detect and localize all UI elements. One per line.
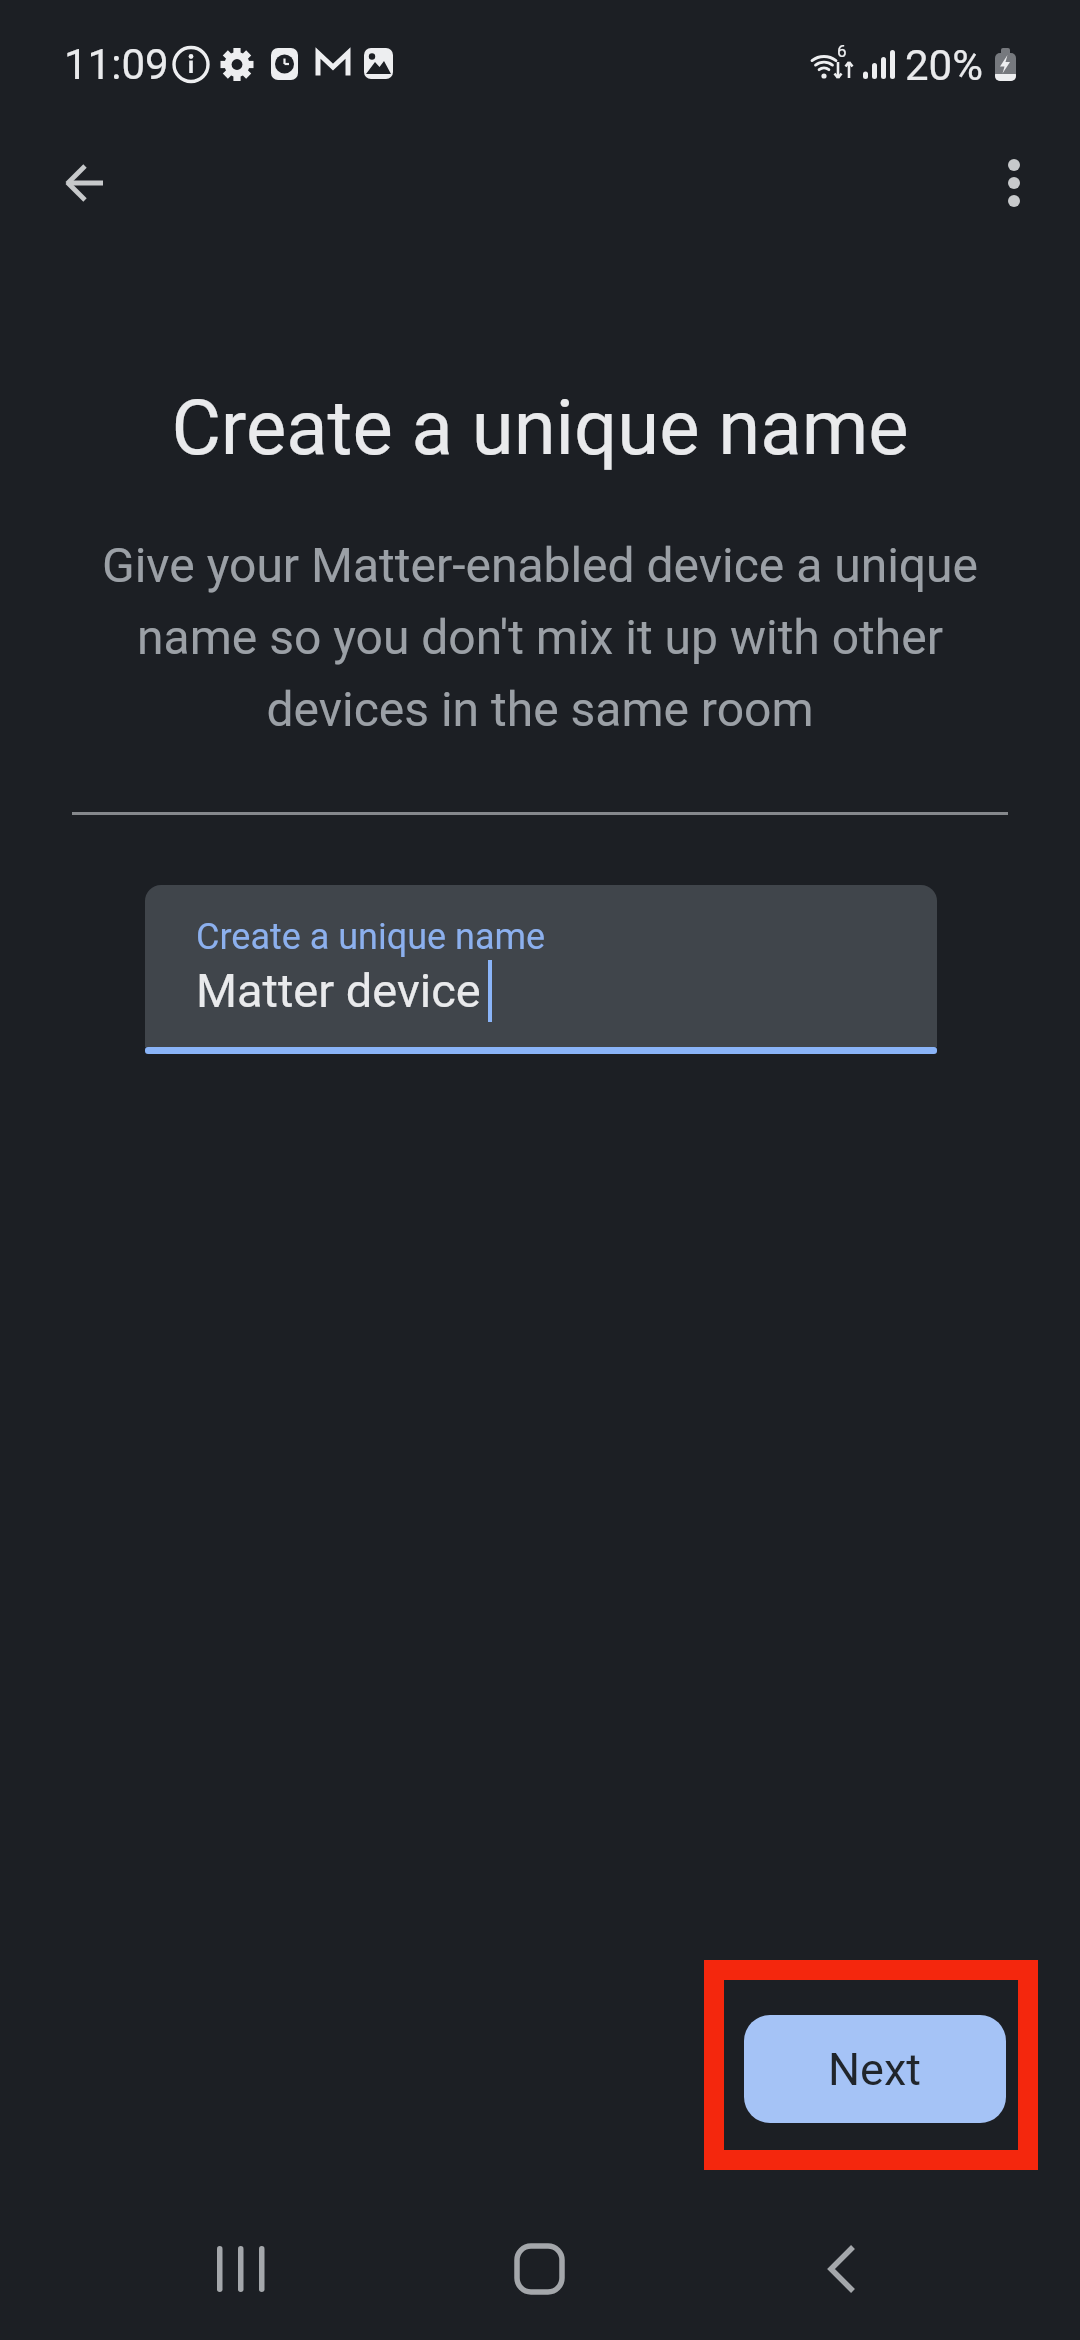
staticText: 20% — [905, 41, 983, 90]
button[interactable] — [966, 135, 1062, 231]
staticText: Give your Matter-enabled device a unique… — [0, 537, 1080, 738]
button[interactable] — [770, 2198, 914, 2340]
staticText: Create a unique name — [196, 916, 546, 958]
staticText: Next — [828, 2043, 922, 2096]
staticText: Create a unique name — [0, 383, 1080, 472]
button[interactable]: Next — [744, 2015, 1006, 2123]
button[interactable]: Create a unique name — [145, 885, 937, 1047]
staticText: 11:09 — [64, 40, 169, 89]
staticText: 6 — [837, 41, 847, 61]
button[interactable] — [36, 135, 132, 231]
button[interactable] — [468, 2198, 612, 2340]
button[interactable] — [168, 2198, 312, 2340]
staticText: Matter device — [196, 963, 481, 1018]
